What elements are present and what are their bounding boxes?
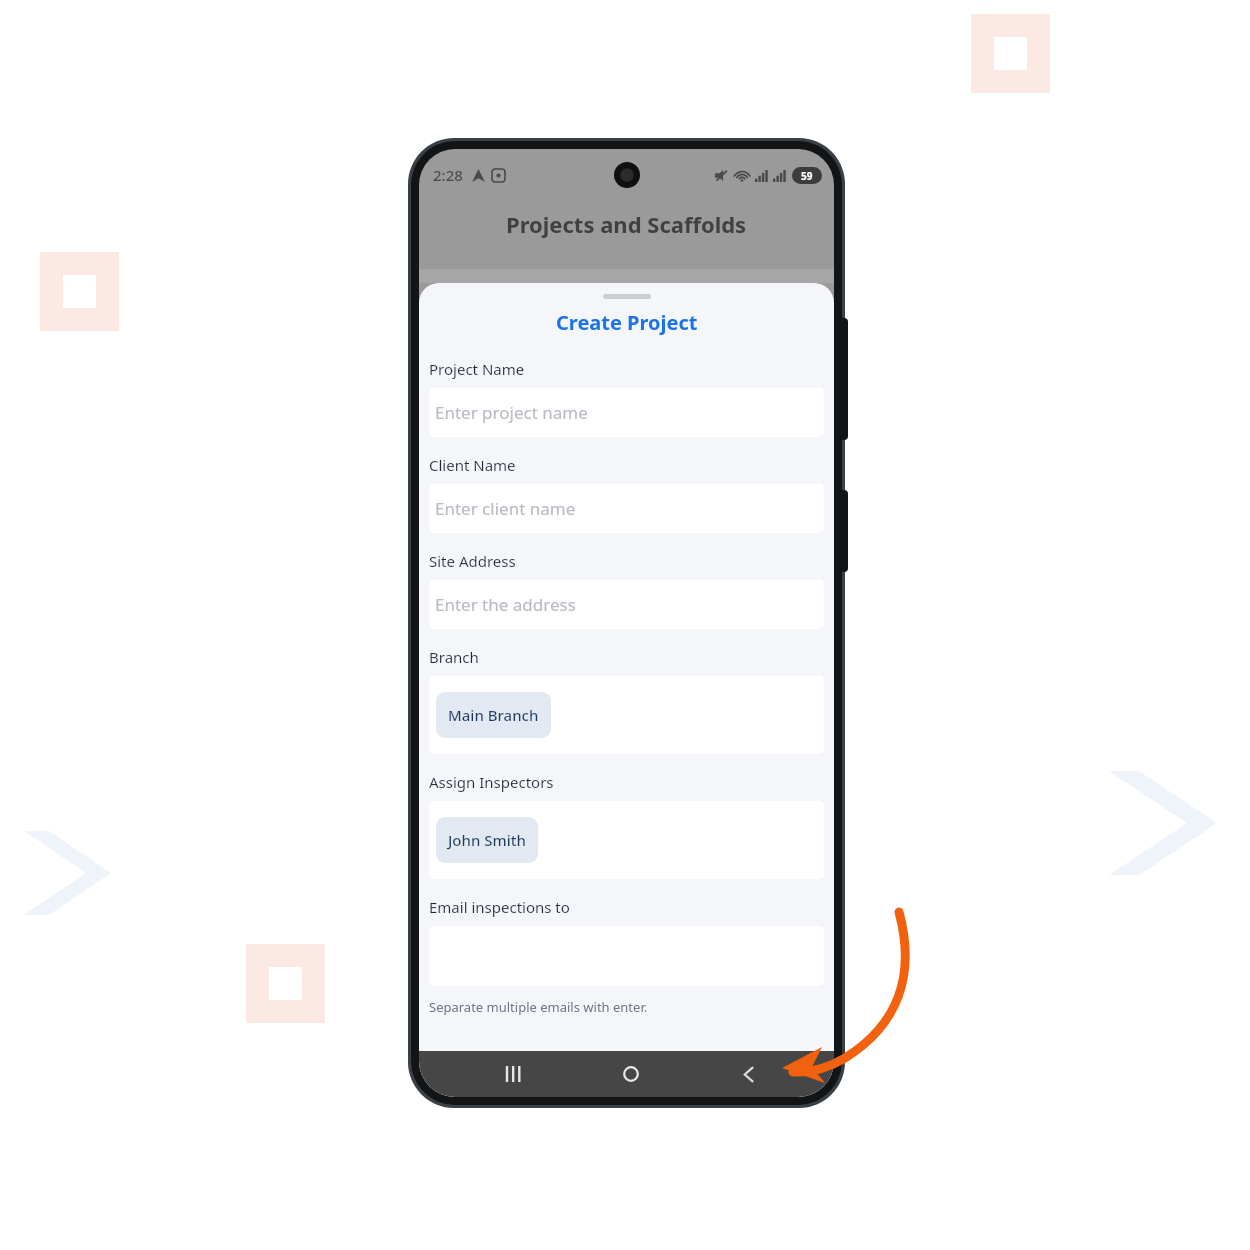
- staticText: Branch: [429, 647, 479, 667]
- staticText: Enter the address: [435, 593, 576, 616]
- staticText: Client Name: [429, 455, 516, 475]
- staticText: 59: [801, 169, 813, 183]
- staticText: Site Address: [429, 551, 516, 571]
- button[interactable]: Enter project name: [429, 388, 824, 437]
- button[interactable]: Main Branch: [448, 705, 539, 725]
- button[interactable]: Enter client name: [429, 484, 824, 533]
- staticText: Main Branch: [448, 705, 539, 725]
- staticText: 2:28: [433, 165, 463, 185]
- staticText: Email inspections to: [429, 897, 570, 917]
- staticText: Enter client name: [435, 497, 576, 520]
- button[interactable]: John Smith: [448, 830, 526, 850]
- button[interactable]: Back: [732, 1057, 766, 1091]
- button[interactable]: Recent apps: [497, 1057, 531, 1091]
- staticText: John Smith: [448, 830, 526, 850]
- staticText: Separate multiple emails with enter.: [429, 998, 648, 1016]
- staticText: Enter project name: [435, 401, 588, 424]
- staticText: Projects and Scaffolds: [506, 209, 747, 239]
- button[interactable]: Home: [614, 1057, 648, 1091]
- button[interactable]: Enter the address: [429, 580, 824, 629]
- staticText: Assign Inspectors: [429, 772, 554, 792]
- staticText: Create Project: [556, 309, 698, 336]
- staticText: Project Name: [429, 359, 525, 379]
